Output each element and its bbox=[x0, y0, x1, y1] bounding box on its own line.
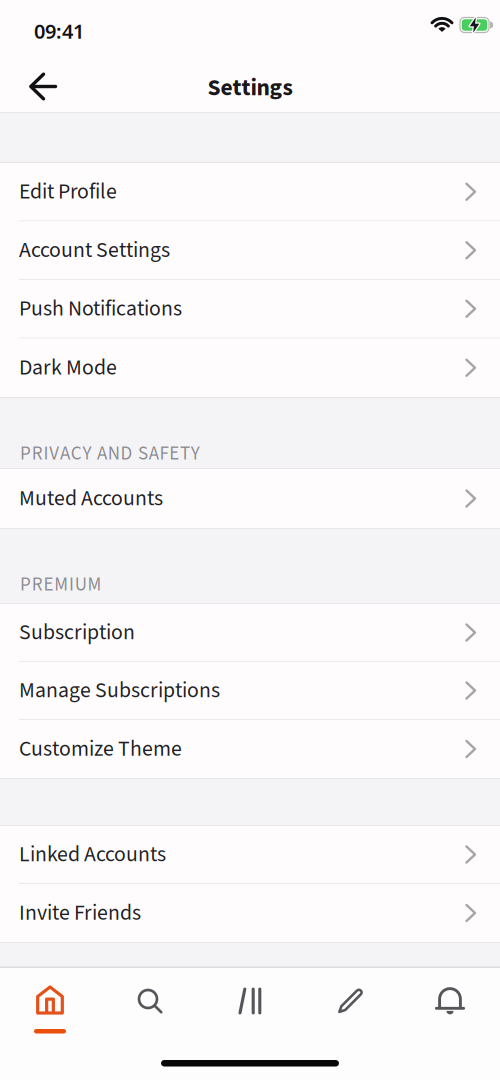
button[interactable]: Dark Mode bbox=[0, 338, 500, 397]
button[interactable]: Muted Accounts bbox=[0, 469, 500, 528]
staticText: Push Notifications bbox=[19, 293, 182, 324]
staticText: Settings bbox=[207, 71, 292, 105]
button[interactable]: Linked Accounts bbox=[0, 826, 500, 884]
staticText: Muted Accounts bbox=[19, 483, 163, 514]
staticText: Dark Mode bbox=[19, 352, 117, 383]
staticText: PREMIUM bbox=[20, 571, 101, 598]
staticText: Subscription bbox=[19, 617, 135, 648]
staticText: Edit Profile bbox=[19, 176, 117, 207]
staticText: Account Settings bbox=[19, 235, 170, 266]
button[interactable]: Write bbox=[300, 968, 400, 1034]
button[interactable]: Customize Theme bbox=[0, 720, 500, 778]
button[interactable]: Subscription bbox=[0, 604, 500, 662]
button[interactable]: Search bbox=[100, 968, 200, 1034]
button[interactable]: Push Notifications bbox=[0, 280, 500, 338]
button[interactable]: Library bbox=[200, 968, 300, 1034]
staticText: PRIVACY AND SAFETY bbox=[20, 440, 200, 467]
button[interactable]: Invite Friends bbox=[0, 884, 500, 942]
button[interactable]: Manage Subscriptions bbox=[0, 662, 500, 720]
staticText: Invite Friends bbox=[19, 897, 141, 928]
button[interactable]: Edit Profile bbox=[0, 163, 500, 221]
button[interactable]: Notifications bbox=[400, 968, 500, 1034]
staticText: 09:41 bbox=[34, 18, 84, 44]
staticText: Linked Accounts bbox=[19, 839, 166, 870]
staticText: Manage Subscriptions bbox=[19, 675, 220, 706]
staticText: Customize Theme bbox=[19, 733, 182, 764]
button[interactable]: Home bbox=[0, 968, 100, 1034]
button[interactable]: Account Settings bbox=[0, 221, 500, 280]
button[interactable]: Back bbox=[0, 62, 57, 100]
